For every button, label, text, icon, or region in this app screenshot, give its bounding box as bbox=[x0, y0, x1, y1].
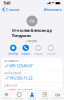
button[interactable]: Автоответчик bbox=[51, 91, 64, 99]
button[interactable]: Изменить bbox=[43, 6, 64, 13]
button[interactable]: домашний bbox=[2, 58, 62, 70]
staticText: +7 495 123-45-67 bbox=[4, 63, 32, 68]
button[interactable]: Списки bbox=[0, 6, 19, 13]
staticText: рабочий bbox=[4, 84, 17, 87]
button[interactable]: Недавние bbox=[13, 91, 26, 99]
staticText: +7 916 555-11-22 bbox=[4, 75, 32, 81]
button[interactable]: мобильный bbox=[2, 70, 62, 82]
button[interactable]: Отправить сообщение bbox=[2, 96, 62, 100]
button[interactable]: вызов bbox=[20, 45, 31, 55]
staticText: Загрузка… bbox=[26, 39, 38, 43]
staticText: Недавние bbox=[15, 97, 23, 99]
staticText: видео bbox=[34, 52, 43, 55]
button[interactable]: Контакты bbox=[26, 91, 38, 99]
staticText: Огнеслав Александр Погрушко bbox=[11, 27, 52, 38]
staticText: сообщ. bbox=[8, 52, 18, 55]
staticText: ОА bbox=[29, 18, 35, 24]
staticText: домашний bbox=[4, 59, 19, 63]
staticText: Контакты bbox=[28, 97, 36, 99]
button[interactable]: видео bbox=[33, 45, 44, 55]
staticText: +7 499 777-00-11 bbox=[4, 88, 32, 93]
staticText: Автоответчик bbox=[52, 97, 64, 99]
staticText: Клавиши bbox=[41, 97, 48, 99]
button[interactable]: рабочий bbox=[2, 82, 62, 94]
staticText: Изменить bbox=[43, 7, 61, 12]
staticText: почта bbox=[47, 52, 55, 55]
button[interactable]: сообщ. bbox=[8, 45, 19, 55]
button[interactable]: Клавиши bbox=[38, 91, 51, 99]
staticText: вызов bbox=[21, 52, 30, 55]
staticText: Отправить сообщение bbox=[4, 98, 44, 100]
button[interactable]: почта bbox=[45, 45, 56, 55]
staticText: Избранное bbox=[2, 97, 11, 99]
staticText: Списки bbox=[6, 7, 19, 12]
staticText: мобильный bbox=[4, 72, 21, 75]
button[interactable]: Избранное bbox=[0, 91, 13, 99]
staticText: 9:41 bbox=[3, 0, 10, 6]
